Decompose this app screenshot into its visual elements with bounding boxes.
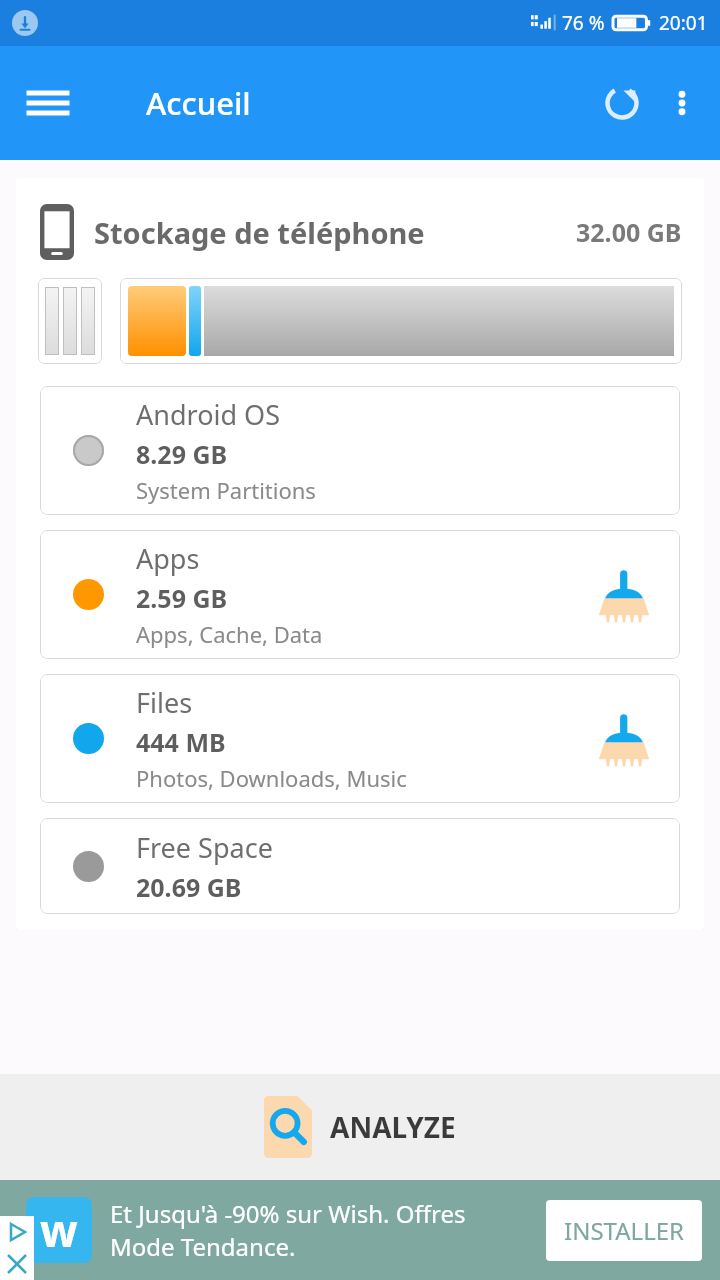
button[interactable]: Menu	[20, 75, 76, 131]
staticText: Files	[136, 684, 193, 721]
staticText: ANALYZE	[330, 1108, 456, 1146]
staticText: 32.00 GB	[576, 215, 682, 249]
staticText: Apps, Cache, Data	[136, 619, 323, 649]
button[interactable]: Android OS	[40, 386, 680, 515]
staticText: 20.69 GB	[136, 870, 242, 904]
staticText: Free Space	[136, 829, 273, 866]
staticText: Et Jusqu'à -90% sur Wish. Offres Mode Te…	[110, 1197, 532, 1263]
staticText: Apps	[136, 540, 200, 577]
button[interactable]: ANALYZE	[0, 1074, 720, 1180]
button[interactable]: Apps	[40, 530, 680, 659]
staticText: 20:01	[659, 10, 708, 36]
staticText: 76 %	[562, 10, 605, 36]
staticText: Android OS	[136, 396, 280, 433]
button[interactable]: Storage usage	[128, 286, 674, 356]
staticText: 2.59 GB	[136, 581, 228, 615]
staticText: 8.29 GB	[136, 437, 228, 471]
staticText: Photos, Downloads, Music	[136, 763, 407, 793]
button[interactable]: Free Space	[40, 818, 680, 914]
button[interactable]: Files	[40, 674, 680, 803]
staticText: 444 MB	[136, 725, 226, 759]
button[interactable]: More options	[654, 75, 710, 131]
button[interactable]: Clean	[592, 563, 656, 627]
button[interactable]: Clean	[592, 707, 656, 771]
button[interactable]: INSTALLER	[546, 1200, 702, 1261]
button[interactable]: Refresh	[590, 71, 654, 135]
staticText: Stockage de téléphone	[94, 213, 425, 252]
button[interactable]: Legend	[38, 278, 102, 364]
staticText: System Partitions	[136, 475, 316, 505]
staticText: INSTALLER	[564, 1214, 684, 1247]
staticText: w	[40, 1200, 78, 1260]
staticText: Accueil	[146, 82, 251, 124]
